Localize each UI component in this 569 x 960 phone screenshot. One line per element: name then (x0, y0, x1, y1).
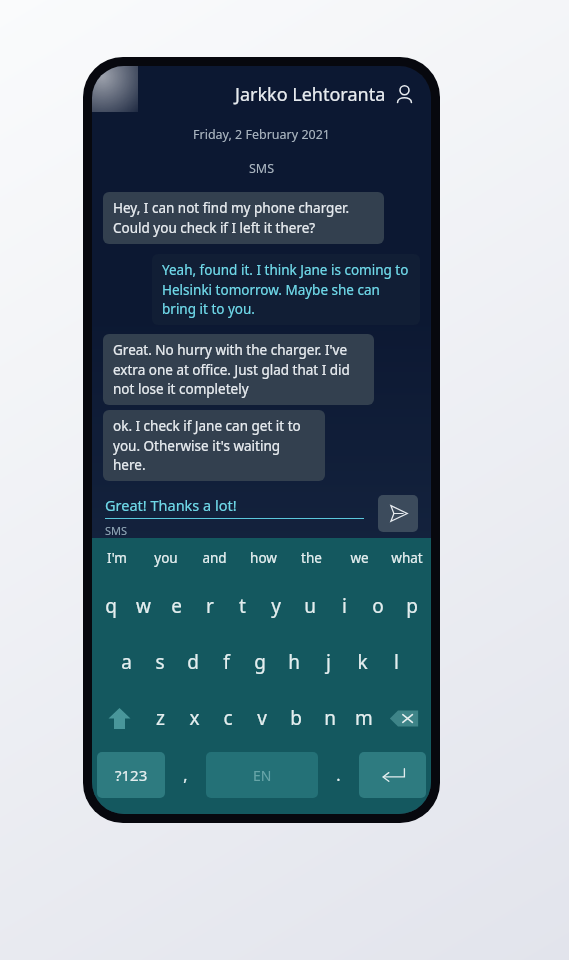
staticText: p (406, 593, 418, 619)
staticText: g (254, 649, 266, 675)
staticText: I'm (107, 549, 127, 567)
staticText: e (171, 593, 182, 619)
button[interactable]: p (395, 578, 429, 634)
staticText: s (155, 649, 165, 675)
button[interactable]: j (311, 634, 345, 690)
button[interactable]: you (141, 538, 190, 578)
button[interactable]: o (361, 578, 395, 634)
button[interactable]: t (226, 578, 259, 634)
button[interactable]: how (239, 538, 287, 578)
button[interactable]: z (143, 690, 177, 746)
staticText: f (223, 649, 230, 675)
button[interactable]: and (190, 538, 239, 578)
staticText: r (206, 593, 214, 619)
staticText: i (342, 593, 347, 619)
button[interactable]: Hey, I can not find my phone charger. Co… (103, 192, 384, 244)
staticText: how (250, 549, 277, 567)
button[interactable]: Send (378, 495, 418, 532)
button[interactable]: c (211, 690, 245, 746)
staticText: o (372, 593, 384, 619)
staticText: t (239, 593, 246, 619)
staticText: d (187, 649, 199, 675)
staticText: z (156, 705, 165, 731)
staticText: Hey, I can not find my phone charger. Co… (113, 199, 374, 237)
button[interactable]: d (176, 634, 209, 690)
staticText: Friday, 2 February 2021 (92, 126, 431, 143)
button[interactable]: s (143, 634, 176, 690)
button[interactable]: a (110, 634, 143, 690)
staticText: x (189, 705, 200, 731)
staticText: y (271, 593, 281, 619)
staticText: Great! Thanks a lot! (105, 495, 237, 515)
staticText: n (324, 705, 336, 731)
staticText: j (326, 649, 331, 675)
button[interactable]: u (293, 578, 327, 634)
button[interactable]: Backspace (381, 690, 427, 746)
button[interactable]: n (313, 690, 347, 746)
button[interactable]: i (327, 578, 361, 634)
staticText: . (336, 764, 341, 786)
button[interactable]: v (245, 690, 279, 746)
button[interactable]: ?123 (97, 752, 165, 798)
staticText: the (301, 549, 322, 567)
button[interactable]: Shift (96, 690, 143, 746)
button[interactable]: l (379, 634, 413, 690)
button[interactable]: EN (206, 752, 318, 798)
button[interactable]: r (193, 578, 226, 634)
staticText: SMS (92, 160, 431, 177)
button[interactable]: w (127, 578, 160, 634)
button[interactable]: y (259, 578, 293, 634)
button[interactable]: k (345, 634, 379, 690)
staticText: m (355, 705, 373, 731)
staticText: b (290, 705, 302, 731)
staticText: u (304, 593, 316, 619)
button[interactable]: the (287, 538, 335, 578)
button[interactable]: h (277, 634, 311, 690)
staticText: ?123 (115, 765, 148, 785)
staticText: v (257, 705, 267, 731)
staticText: l (394, 649, 399, 675)
staticText: Jarkko Lehtoranta (235, 82, 386, 107)
button[interactable]: , (168, 752, 203, 798)
staticText: we (350, 549, 369, 567)
staticText: k (357, 649, 368, 675)
button[interactable]: g (243, 634, 277, 690)
button[interactable]: x (177, 690, 211, 746)
other: Contact details (394, 84, 415, 105)
button[interactable]: I'm (92, 538, 141, 578)
button[interactable]: b (279, 690, 313, 746)
staticText: Yeah, found it. I think Jane is coming t… (162, 261, 410, 318)
staticText: c (223, 705, 233, 731)
button[interactable]: Jarkko Lehtoranta (92, 66, 431, 122)
button[interactable]: Enter (359, 752, 426, 798)
staticText: SMS (105, 523, 128, 538)
staticText: , (183, 764, 188, 786)
staticText: h (288, 649, 300, 675)
staticText: ok. I check if Jane can get it to you. O… (113, 417, 315, 474)
button[interactable]: we (335, 538, 383, 578)
button[interactable]: what (383, 538, 431, 578)
button[interactable]: e (160, 578, 193, 634)
staticText: and (202, 549, 227, 567)
staticText: what (391, 549, 423, 567)
button[interactable]: f (209, 634, 243, 690)
staticText: EN (253, 766, 272, 785)
button[interactable]: m (347, 690, 381, 746)
staticText: a (121, 649, 132, 675)
staticText: you (154, 549, 178, 567)
button[interactable]: Great! Thanks a lot! (105, 495, 364, 538)
staticText: w (136, 593, 151, 619)
staticText: Great. No hurry with the charger. I've e… (113, 341, 364, 398)
button[interactable]: Great. No hurry with the charger. I've e… (103, 334, 374, 405)
button[interactable]: ok. I check if Jane can get it to you. O… (103, 410, 325, 481)
staticText: q (105, 593, 117, 619)
button[interactable]: . (321, 752, 356, 798)
button[interactable]: Yeah, found it. I think Jane is coming t… (152, 254, 420, 325)
button[interactable]: q (94, 578, 127, 634)
